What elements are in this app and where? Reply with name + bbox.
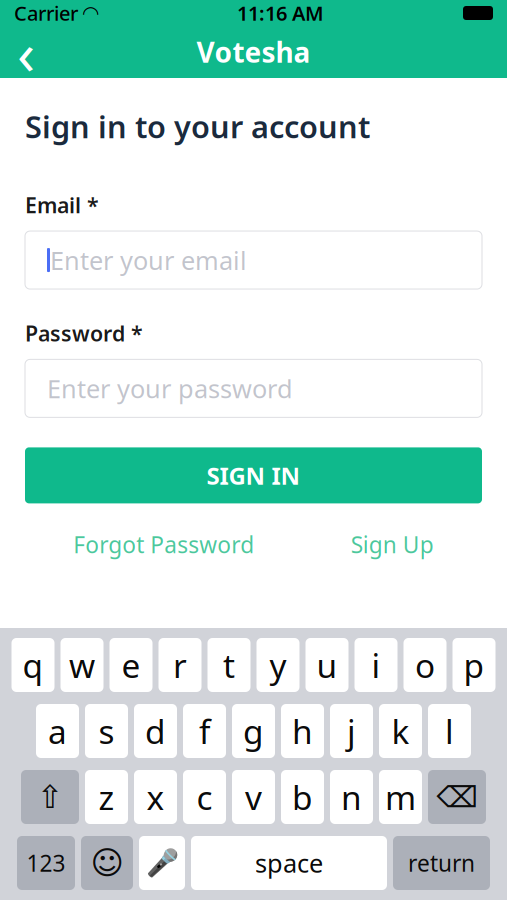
staticText: f	[199, 709, 210, 753]
staticText: Password *	[25, 319, 143, 347]
button[interactable]: p	[452, 638, 495, 692]
button[interactable]: w	[60, 638, 103, 692]
staticText: Carrier	[14, 0, 78, 26]
button[interactable]: i	[354, 638, 397, 692]
staticText: x	[146, 775, 164, 819]
staticText: o	[415, 643, 435, 687]
staticText: ⇧	[36, 779, 63, 815]
staticText: Sign in to your account	[25, 106, 370, 147]
staticText: Forgot Password	[73, 529, 254, 559]
staticText: a	[48, 709, 67, 753]
button[interactable]: Sign Up	[351, 529, 434, 559]
button[interactable]: v	[232, 770, 275, 824]
staticText: t	[223, 643, 235, 687]
button[interactable]: c	[183, 770, 226, 824]
staticText: 11:16 AM	[237, 0, 324, 26]
staticText: Enter your password	[47, 372, 293, 405]
staticText: SIGN IN	[206, 459, 300, 491]
staticText: i	[371, 643, 380, 687]
button[interactable]: ⇧	[21, 770, 79, 824]
staticText: z	[98, 775, 114, 819]
button[interactable]: k	[379, 704, 422, 758]
button[interactable]: h	[281, 704, 324, 758]
staticText: r	[173, 643, 187, 687]
button[interactable]: j	[330, 704, 373, 758]
button[interactable]: a	[36, 704, 79, 758]
button[interactable]: o	[403, 638, 446, 692]
staticText: y	[269, 643, 286, 687]
button[interactable]: x	[134, 770, 177, 824]
staticText: g	[243, 709, 264, 753]
button[interactable]: s	[85, 704, 128, 758]
staticText: l	[445, 709, 454, 753]
staticText: c	[196, 775, 212, 819]
button[interactable]: t	[207, 638, 250, 692]
button[interactable]: l	[428, 704, 471, 758]
staticText: v	[245, 775, 262, 819]
staticText: h	[292, 709, 313, 753]
button[interactable]: m	[379, 770, 422, 824]
button[interactable]: n	[330, 770, 373, 824]
staticText: b	[292, 775, 313, 819]
button[interactable]: ☺	[81, 836, 133, 890]
staticText: d	[145, 709, 166, 753]
staticText: j	[347, 709, 356, 753]
staticText: ◠	[83, 2, 98, 24]
button[interactable]: z	[85, 770, 128, 824]
button[interactable]: f	[183, 704, 226, 758]
staticText: n	[341, 775, 362, 819]
button[interactable]: 123	[17, 836, 75, 890]
button[interactable]: space	[191, 836, 387, 890]
staticText: ☺	[90, 845, 123, 881]
button[interactable]: q	[11, 638, 54, 692]
staticText: k	[391, 709, 409, 753]
button[interactable]: r	[158, 638, 201, 692]
staticText: space	[255, 846, 323, 880]
staticText: s	[98, 709, 114, 753]
button[interactable]: return	[393, 836, 490, 890]
staticText: q	[22, 643, 43, 687]
button[interactable]: e	[109, 638, 152, 692]
staticText: Email *	[25, 191, 99, 219]
button[interactable]: SIGN IN	[25, 447, 482, 503]
staticText: p	[463, 643, 484, 687]
staticText: 123	[26, 848, 65, 878]
button[interactable]: ⌫	[428, 770, 486, 824]
staticText: Sign Up	[351, 529, 434, 559]
staticText: m	[385, 775, 416, 819]
staticText: ⌫	[436, 780, 477, 814]
staticText: w	[69, 643, 95, 687]
button[interactable]: b	[281, 770, 324, 824]
button[interactable]: g	[232, 704, 275, 758]
button[interactable]: 🎤	[139, 836, 185, 890]
staticText: ‹	[17, 13, 35, 91]
button[interactable]: u	[305, 638, 348, 692]
staticText: Votesha	[196, 33, 310, 71]
button[interactable]: y	[256, 638, 299, 692]
staticText: return	[408, 848, 475, 878]
staticText: 🎤	[145, 848, 178, 878]
staticText: e	[121, 643, 140, 687]
button[interactable]: d	[134, 704, 177, 758]
staticText: Enter your email	[50, 243, 247, 277]
button[interactable]: Forgot Password	[73, 529, 254, 559]
button[interactable]: Back	[0, 26, 52, 78]
staticText: u	[316, 643, 337, 687]
